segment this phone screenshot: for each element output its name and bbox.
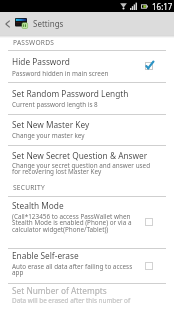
staticText: Auto erase all data after failing to acc… [12, 262, 134, 277]
button[interactable] [0, 114, 174, 145]
staticText: Set New Master Key [12, 119, 152, 130]
staticText: Data will be erased after this number of [12, 296, 153, 305]
button[interactable] [0, 248, 174, 282]
staticText: PASSWORDS [13, 38, 55, 47]
button[interactable] [0, 82, 174, 113]
staticText: 16:17 [152, 1, 173, 12]
button[interactable] [0, 196, 174, 248]
button[interactable]: Navigate up [0, 12, 15, 35]
button[interactable] [0, 50, 174, 82]
staticText: Set New Secret Question & Answer [12, 150, 162, 161]
button[interactable] [0, 145, 174, 185]
staticText: Set Random Password Length [12, 88, 152, 99]
staticText: Enable Self-erase [12, 250, 152, 261]
staticText: Hide Password [12, 56, 152, 67]
button[interactable]: Checked [138, 56, 160, 76]
button[interactable]: Unchecked [138, 212, 160, 232]
staticText: Change your master key [12, 131, 153, 140]
staticText: Settings [33, 18, 64, 29]
staticText: SECURITY [13, 183, 46, 192]
staticText: Stealth Mode [12, 200, 152, 211]
staticText: Password hidden in main screen [12, 69, 134, 78]
staticText: (Call*123456 to access PassWallet when S… [12, 212, 134, 234]
staticText: Current password length is 8 [12, 100, 153, 109]
staticText: Change your secret question and answer u… [12, 161, 158, 176]
button[interactable]: Unchecked [138, 256, 160, 276]
staticText: Set Number of Attempts [12, 285, 152, 296]
